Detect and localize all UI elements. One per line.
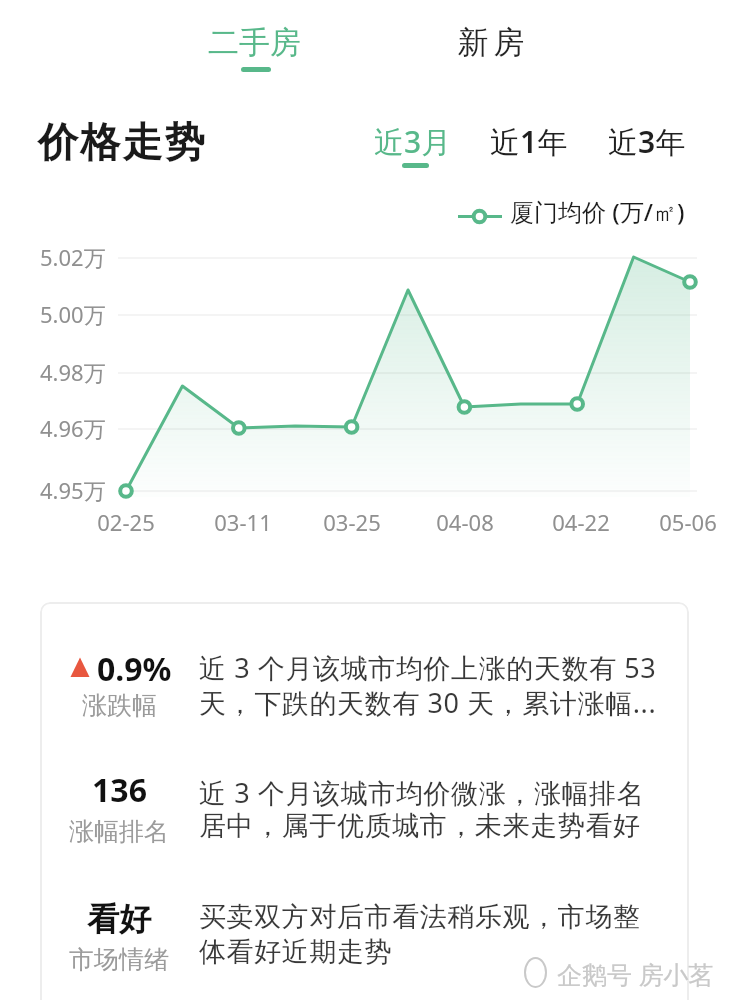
staticText: 05-06 [659,507,717,537]
staticText: 二手房 [208,23,301,62]
staticText: 04-08 [436,507,494,537]
button[interactable]: 近1年 [486,115,568,163]
button[interactable]: 近3月 [370,115,452,163]
button[interactable]: 新房 [447,14,537,74]
staticText: 近 3 个月该城市均价微涨，涨幅排名 [199,774,645,811]
staticText: 市场情绪 [69,944,169,975]
staticText: 136 [92,768,147,812]
staticText: 02-25 [97,507,155,537]
staticText: 03-25 [323,507,381,537]
button[interactable]: 近3年 [604,115,688,163]
staticText: 涨跌幅 [82,690,157,721]
staticText: 价格走势 [38,117,207,167]
button[interactable]: 二手房 [200,14,310,74]
staticText: 居中，属于优质城市，未来走势看好 [199,809,641,843]
staticText: 04-22 [552,507,610,537]
staticText: 0.9% [97,647,172,691]
staticText: 5.02万 [40,242,106,272]
staticText: 近1年 [490,121,568,162]
staticText: 企鹅号 房小茗 [557,957,714,991]
staticText: 5.00万 [40,299,106,329]
staticText: 新房 [455,23,527,62]
staticText: 体看好近期走势 [199,935,393,969]
staticText: 近3月 [374,121,452,162]
staticText: 厦门均价 (万/㎡) [510,195,685,228]
staticText: 涨幅排名 [69,816,169,847]
staticText: 4.96万 [40,413,106,443]
staticText: 看好 [87,899,151,939]
staticText: 天，下跌的天数有 30 天，累计涨幅... [199,684,657,721]
staticText: 近 3 个月该城市均价上涨的天数有 53 [199,649,657,686]
staticText: 买卖双方对后市看法稍乐观，市场整 [199,900,641,934]
staticText: 4.95万 [40,475,106,505]
staticText: 近3年 [608,121,686,162]
staticText: 03-11 [214,507,272,537]
staticText: 4.98万 [40,357,106,387]
